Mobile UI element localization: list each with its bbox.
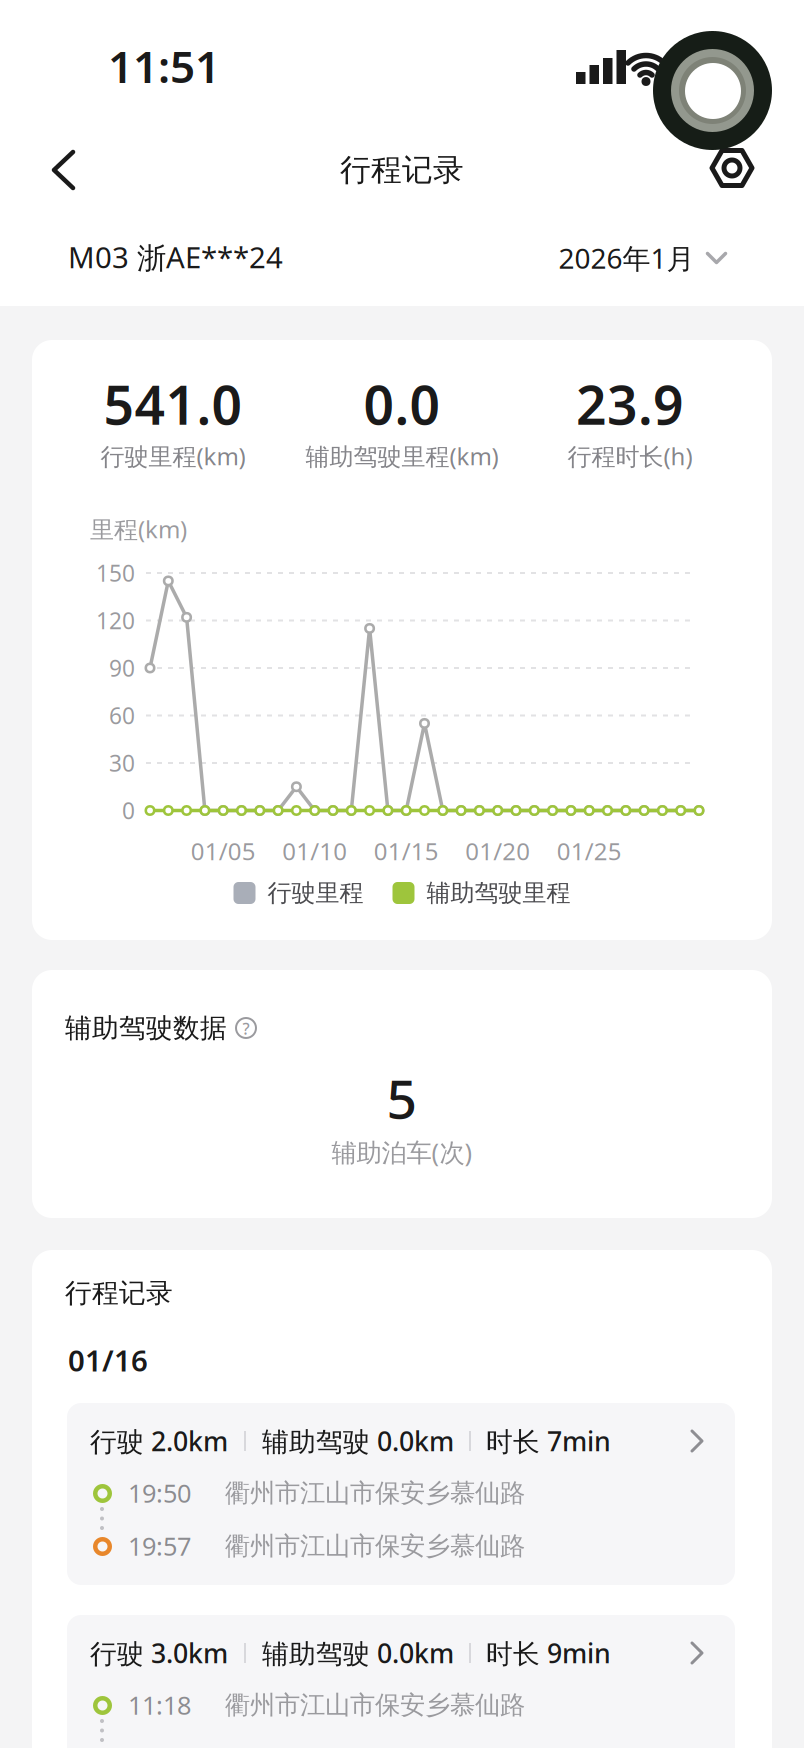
- staticText: 辅助驾驶 0.0km: [262, 1635, 454, 1671]
- button[interactable]: 行驶 3.0km: [67, 1615, 735, 1748]
- staticText: 行驶 2.0km: [90, 1423, 228, 1459]
- staticText: 衢州市江山市保安乡慕仙路: [225, 1689, 525, 1720]
- staticText: 辅助驾驶里程(km): [305, 440, 498, 472]
- staticText: 行驶 3.0km: [90, 1635, 228, 1671]
- staticText: 01/16: [68, 1340, 148, 1379]
- staticText: 19:50: [128, 1476, 191, 1510]
- staticText: 541.0: [103, 369, 242, 439]
- button[interactable]: M03 浙AE***24: [68, 237, 308, 276]
- staticText: M03 浙AE***24: [68, 237, 283, 276]
- button[interactable]: 行驶 2.0km: [67, 1403, 735, 1585]
- staticText: 150: [96, 558, 135, 588]
- staticText: 行驶里程: [267, 878, 363, 908]
- staticText: 11:51: [108, 37, 220, 95]
- staticText: 时长 7min: [486, 1423, 611, 1459]
- staticText: 120: [96, 605, 135, 635]
- staticText: 11:18: [128, 1688, 191, 1722]
- staticText: 行程时长(h): [567, 440, 692, 472]
- staticText: 0: [122, 795, 135, 825]
- staticText: 01/05: [191, 835, 256, 867]
- staticText: 01/10: [282, 835, 347, 867]
- staticText: 衢州市江山市保安乡慕仙路: [225, 1477, 525, 1508]
- staticText: 01/15: [374, 835, 439, 867]
- staticText: 5: [386, 1063, 417, 1133]
- staticText: 辅助泊车(次): [331, 1135, 472, 1169]
- staticText: 时长 9min: [486, 1635, 611, 1671]
- staticText: 90: [109, 653, 135, 683]
- staticText: 辅助驾驶里程: [426, 878, 570, 908]
- staticText: 辅助驾驶数据: [65, 1012, 227, 1044]
- staticText: 0.0: [363, 369, 440, 439]
- button[interactable]: [709, 146, 755, 190]
- staticText: 辅助驾驶 0.0km: [262, 1423, 454, 1459]
- staticText: 30: [109, 748, 135, 778]
- staticText: 19:57: [128, 1529, 191, 1563]
- staticText: 60: [109, 700, 135, 730]
- staticText: 行驶里程(km): [100, 440, 245, 472]
- button[interactable]: [52, 150, 76, 190]
- button[interactable]: 2026年1月: [558, 239, 727, 277]
- staticText: 01/20: [465, 835, 530, 867]
- staticText: 2026年1月: [558, 239, 694, 277]
- staticText: 01/25: [557, 835, 622, 867]
- staticText: 23.9: [576, 369, 684, 439]
- button[interactable]: ?: [235, 1017, 257, 1039]
- staticText: 行程记录: [340, 151, 464, 189]
- staticText: ?: [242, 1018, 249, 1039]
- staticText: 里程(km): [90, 513, 187, 545]
- staticText: 行程记录: [65, 1277, 173, 1309]
- staticText: 衢州市江山市保安乡慕仙路: [225, 1530, 525, 1561]
